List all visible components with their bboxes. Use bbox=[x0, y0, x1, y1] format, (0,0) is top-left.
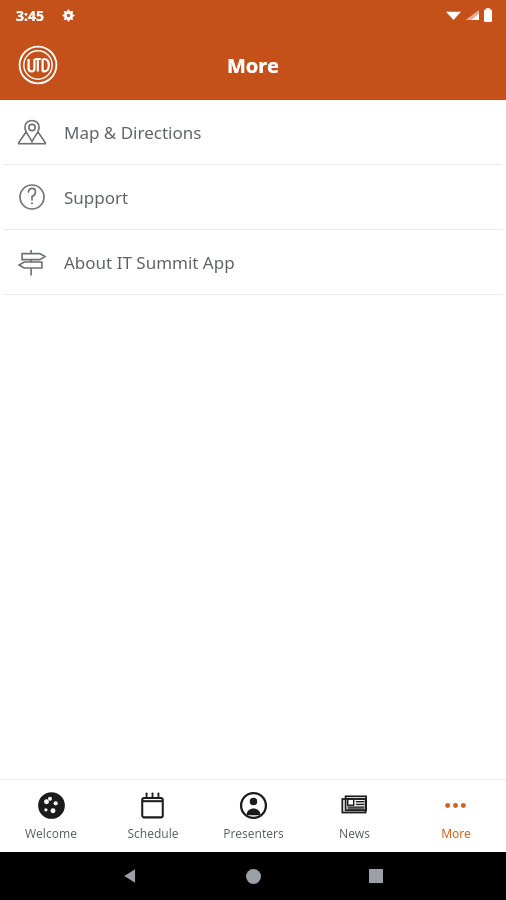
button[interactable]: Welcome bbox=[0, 780, 102, 852]
staticText: News bbox=[339, 825, 370, 841]
button[interactable]: Map & Directions bbox=[0, 100, 506, 164]
button[interactable]: UTD logo bbox=[16, 43, 60, 87]
staticText: Map & Directions bbox=[64, 121, 202, 144]
button[interactable]: Support bbox=[0, 165, 506, 229]
button[interactable]: Presenters bbox=[203, 780, 304, 852]
staticText: More bbox=[441, 825, 471, 841]
button[interactable]: About IT Summit App bbox=[0, 230, 506, 294]
staticText: Support bbox=[64, 186, 129, 209]
other: Home bbox=[246, 869, 261, 884]
button[interactable]: More bbox=[405, 780, 506, 852]
other: Back bbox=[121, 867, 139, 885]
button[interactable]: Schedule bbox=[102, 780, 203, 852]
staticText: Schedule bbox=[127, 825, 179, 841]
staticText: About IT Summit App bbox=[64, 251, 235, 274]
staticText: More bbox=[227, 52, 279, 79]
button[interactable]: News bbox=[304, 780, 405, 852]
staticText: Welcome bbox=[25, 825, 77, 841]
staticText: Presenters bbox=[223, 825, 284, 841]
staticText: 3:45 bbox=[16, 6, 44, 25]
